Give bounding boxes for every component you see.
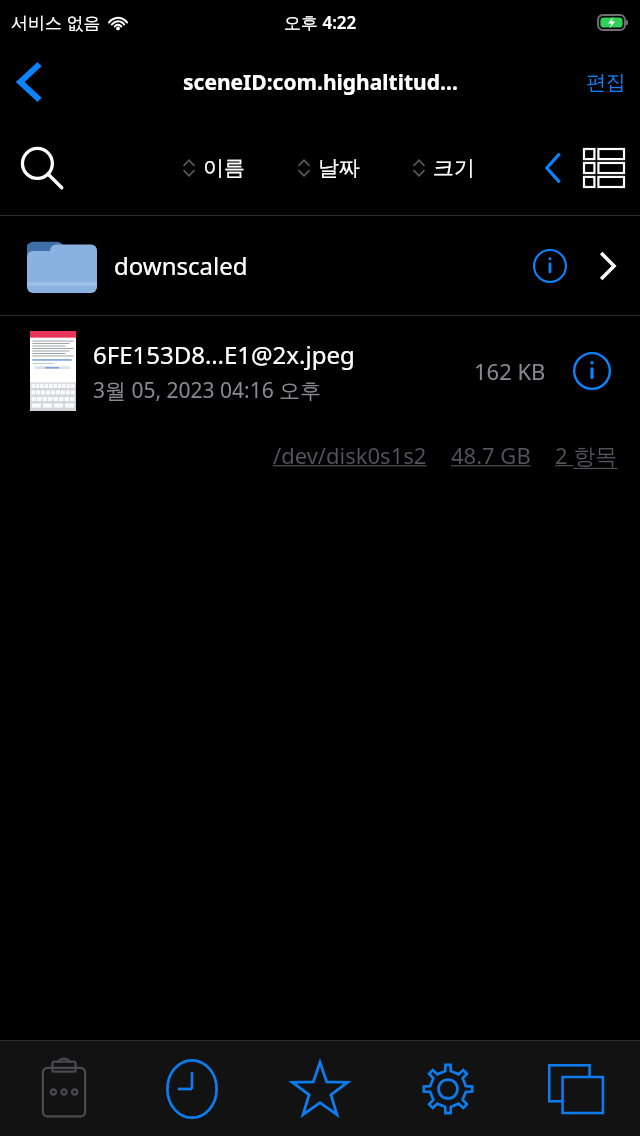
button[interactable]: Search [8,134,76,202]
staticText: 162 KB [474,356,546,386]
button[interactable]: Previous [536,141,570,195]
button[interactable]: Info [566,345,618,397]
button[interactable]: Favorites [256,1041,384,1136]
button[interactable]: downscaled [0,216,640,315]
staticText: 오후 4:22 [284,11,357,34]
button[interactable]: 크기 [412,149,475,187]
staticText: 3월 05, 2023 04:16 오후 [93,376,322,405]
button[interactable]: 이름 [182,149,245,187]
button[interactable]: Info [526,242,574,290]
button[interactable]: Windows [512,1041,640,1136]
button[interactable]: Open folder [590,248,626,284]
staticText: 48.7 GB [451,440,531,470]
button[interactable]: 48.7 GB [451,440,531,470]
button[interactable]: 6FE153D8…E1@2x.jpeg [0,316,640,426]
staticText: /dev/disk0s1s2 [273,440,427,470]
staticText: sceneID:com.highaltitud… [183,68,458,97]
button[interactable]: /dev/disk0s1s2 [273,440,427,470]
button[interactable]: 2 항목 [555,440,618,470]
button[interactable]: Back [0,53,58,111]
staticText: 이름 [203,155,245,181]
staticText: 편집 [586,70,626,95]
button[interactable]: 날짜 [297,149,360,187]
staticText: 날짜 [318,155,360,181]
staticText: downscaled [114,249,248,282]
button[interactable]: 편집 [586,70,626,95]
button[interactable]: Recents [128,1041,256,1136]
staticText: 서비스 없음 [11,11,101,34]
staticText: 6FE153D8…E1@2x.jpeg [93,338,355,371]
staticText: 크기 [433,155,475,181]
button[interactable]: List view [578,142,630,194]
button[interactable]: Clipboard [0,1041,128,1136]
button[interactable]: Settings [384,1041,512,1136]
staticText: 2 항목 [555,440,618,470]
